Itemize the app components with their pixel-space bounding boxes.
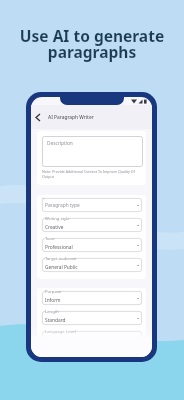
staticText: Professional — [45, 244, 73, 251]
staticText: Note: Provide Additional Context To Impr… — [42, 169, 135, 179]
button[interactable]: Purpose — [42, 291, 142, 305]
button[interactable]: Target audience — [42, 258, 142, 272]
staticText: Creative — [45, 224, 64, 231]
staticText: Standard — [45, 317, 66, 324]
staticText: Language Level — [45, 329, 76, 335]
button[interactable]: Description — [42, 136, 143, 167]
button[interactable]: Language Level — [42, 331, 142, 345]
staticText: Paragraph type — [45, 202, 80, 209]
staticText: Description — [47, 140, 73, 147]
button[interactable]: Writing style — [42, 218, 142, 232]
staticText: AI Paragraph Writer — [48, 114, 94, 121]
staticText: Tone — [45, 236, 55, 242]
staticText: Writing style — [45, 216, 70, 222]
staticText: Length — [45, 309, 59, 315]
button[interactable]: Length — [42, 311, 142, 325]
staticText: Use AI to generate paragraphs — [0, 25, 184, 63]
staticText: Target audience — [45, 256, 77, 262]
button[interactable]: Back — [32, 112, 43, 123]
staticText: Inform — [45, 297, 61, 304]
button[interactable]: Tone — [42, 238, 142, 252]
staticText: General Public — [45, 264, 78, 271]
button[interactable]: Paragraph type — [42, 198, 142, 212]
staticText: Purpose — [45, 289, 62, 295]
